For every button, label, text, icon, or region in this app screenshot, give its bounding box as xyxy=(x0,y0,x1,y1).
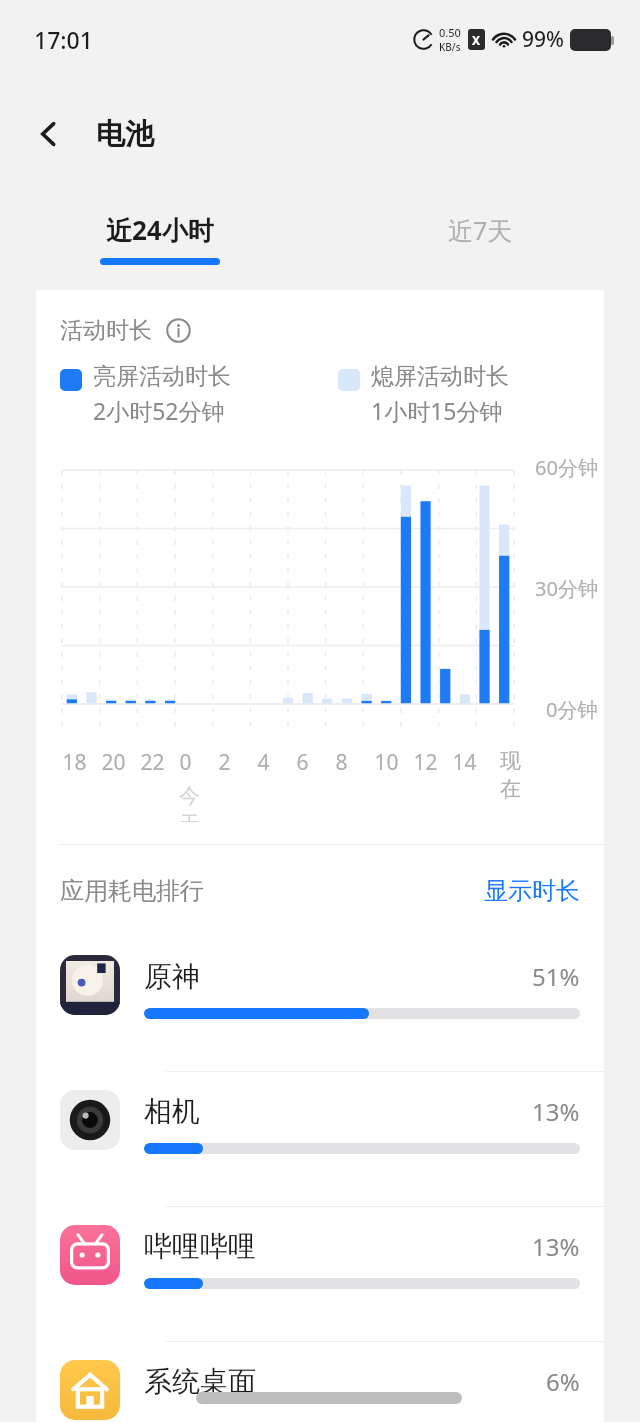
staticText: 13% xyxy=(532,1095,580,1128)
staticText: 熄屏活动时长 xyxy=(371,362,509,391)
staticText: 0分钟 xyxy=(546,696,598,723)
staticText: 系统桌面 xyxy=(144,1364,546,1399)
button[interactable]: 系统桌面 xyxy=(36,1342,604,1422)
button[interactable]: 原神 xyxy=(36,937,604,1072)
staticText: 活动时长 xyxy=(60,316,152,345)
button[interactable]: 显示时长 xyxy=(484,876,580,906)
staticText: 18 xyxy=(62,748,87,777)
staticText: 12 xyxy=(413,748,438,777)
staticText: 6% xyxy=(546,1365,580,1398)
staticText: 99% xyxy=(522,25,564,54)
staticText: 0.50 xyxy=(439,25,461,40)
staticText: 1小时15分钟 xyxy=(371,395,503,426)
staticText: 4 xyxy=(257,748,270,777)
button[interactable]: 相机 xyxy=(36,1072,604,1207)
staticText: 60分钟 xyxy=(535,454,598,481)
staticText: 10 xyxy=(374,748,399,777)
staticText: X xyxy=(472,32,481,48)
staticText: 51% xyxy=(532,960,580,993)
staticText: 8 xyxy=(335,748,348,777)
button[interactable]: 说明 xyxy=(162,314,194,346)
staticText: 13% xyxy=(532,1230,580,1263)
staticText: 14 xyxy=(452,748,477,777)
staticText: 近24小时 xyxy=(106,212,214,248)
staticText: KB/s xyxy=(439,40,461,54)
staticText: 哔哩哔哩 xyxy=(144,1229,532,1264)
staticText: 30分钟 xyxy=(535,575,598,602)
staticText: 现在 xyxy=(491,748,530,802)
staticText: 今天 xyxy=(179,783,218,822)
button[interactable]: 返回 xyxy=(22,107,76,161)
staticText: 相机 xyxy=(144,1094,532,1129)
staticText: 2 xyxy=(218,748,231,777)
staticText: 原神 xyxy=(144,959,532,994)
button[interactable]: 近7天 xyxy=(320,190,640,286)
staticText: 2小时52分钟 xyxy=(93,395,225,426)
staticText: 22 xyxy=(140,748,165,777)
button[interactable]: 哔哩哔哩 xyxy=(36,1207,604,1342)
staticText: 17:01 xyxy=(34,24,93,55)
staticText: 近7天 xyxy=(448,213,513,247)
staticText: 应用耗电排行 xyxy=(60,876,204,906)
staticText: 6 xyxy=(296,748,309,777)
staticText: 20 xyxy=(101,748,126,777)
staticText: 显示时长 xyxy=(484,876,580,906)
staticText: 0 xyxy=(179,748,192,777)
staticText: 电池 xyxy=(96,116,154,153)
button[interactable]: 近24小时 xyxy=(0,190,320,286)
staticText: 亮屏活动时长 xyxy=(93,362,231,391)
